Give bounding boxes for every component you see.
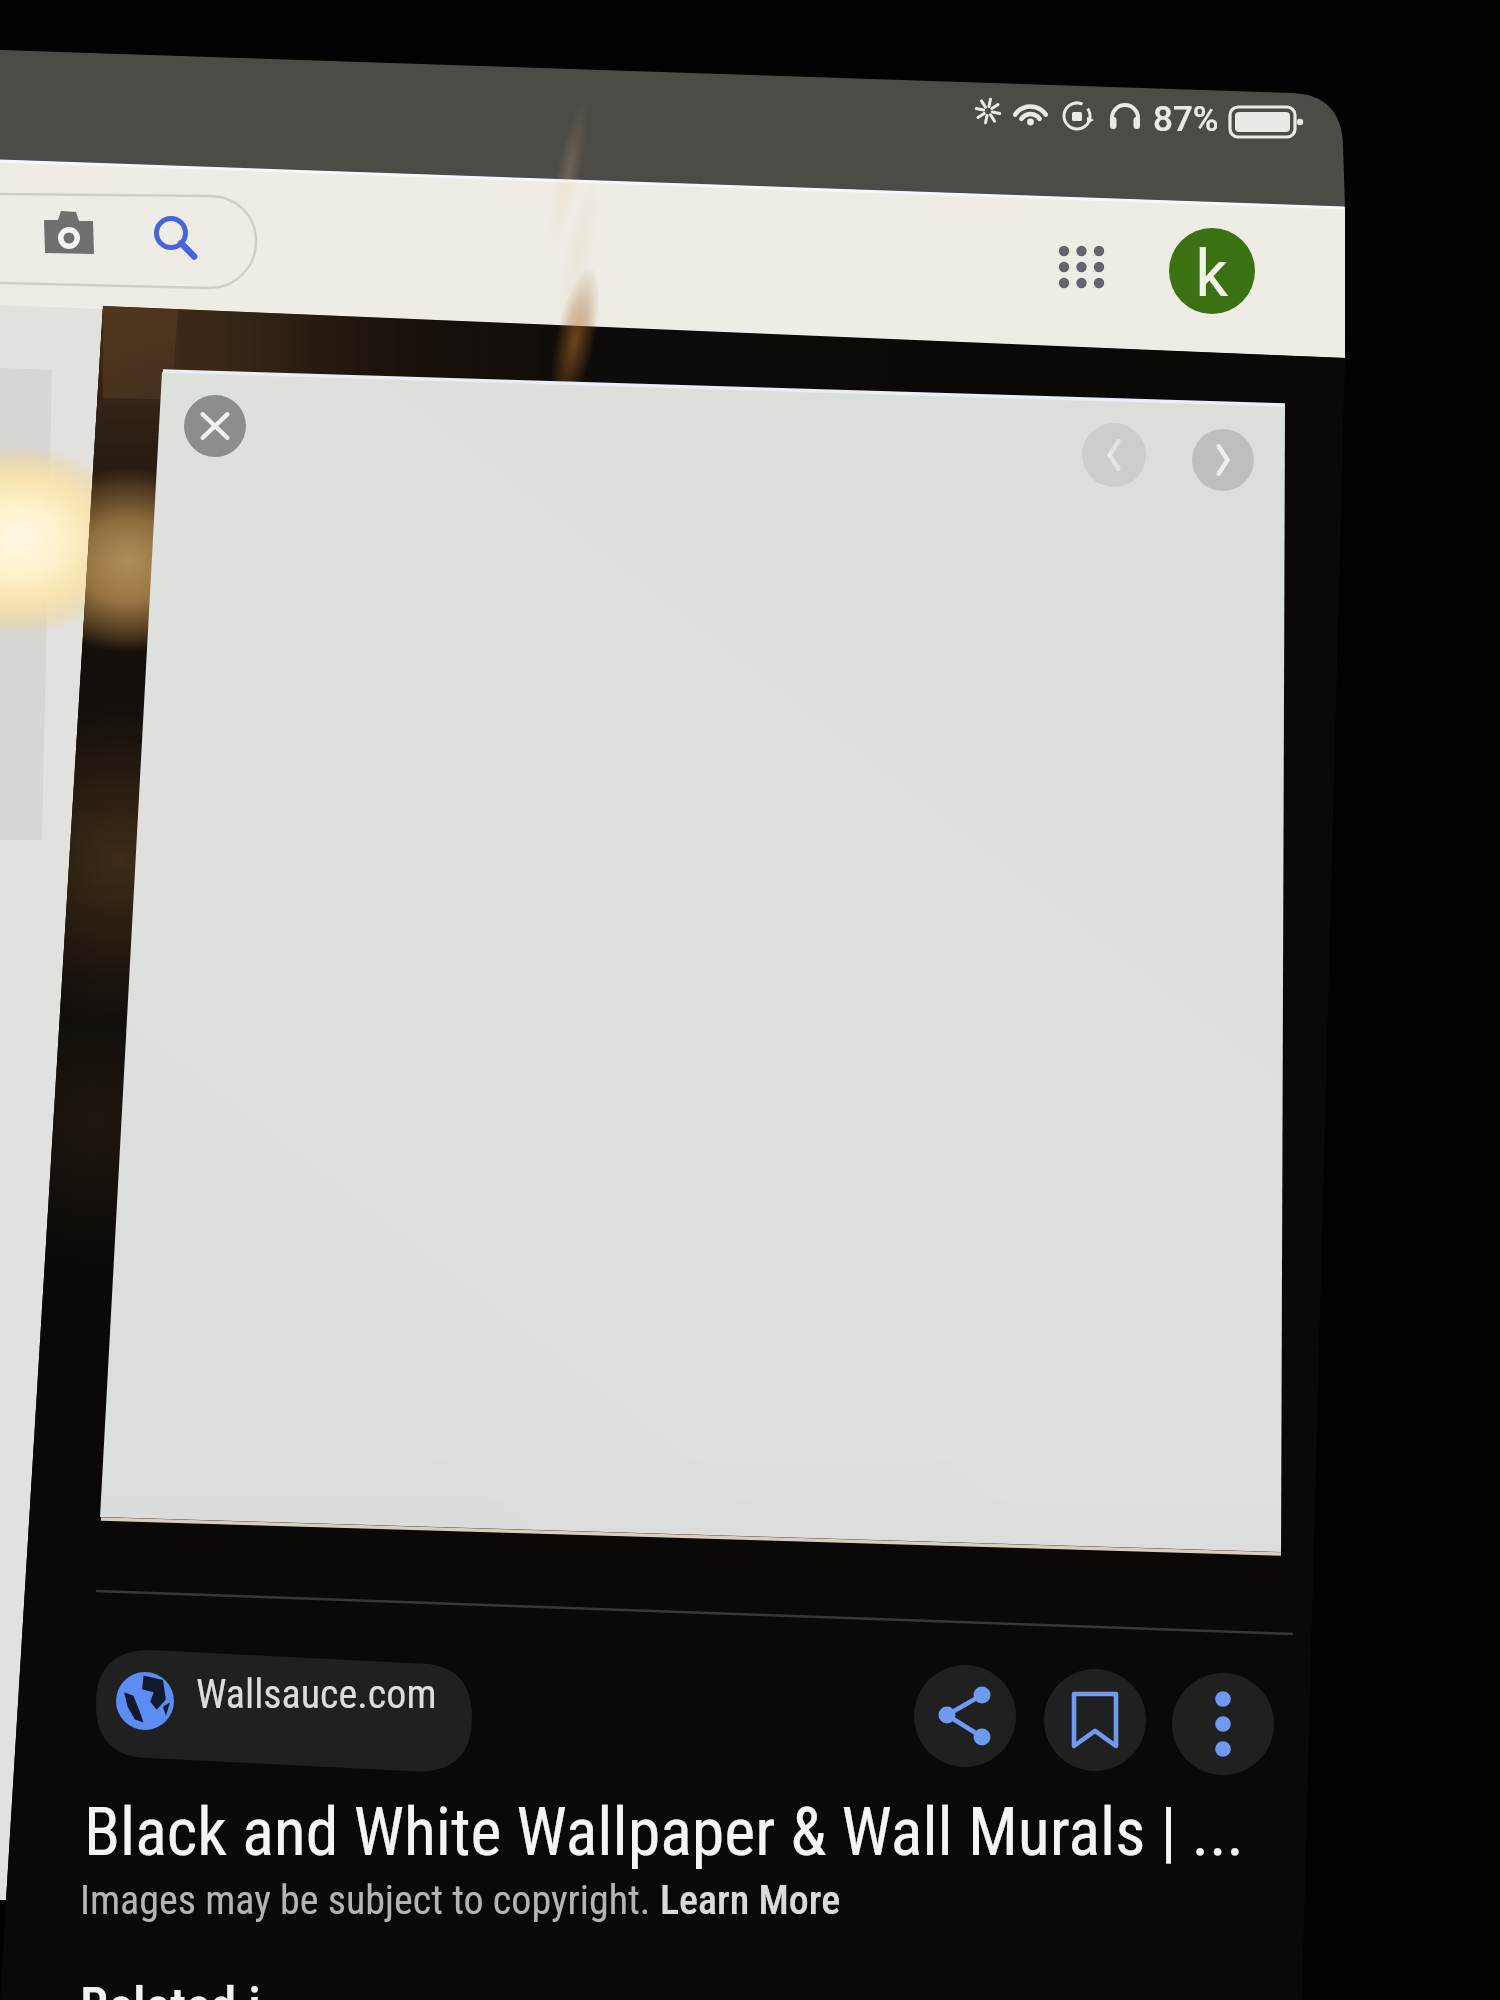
button[interactable]: Bookmark: [1040, 1666, 1150, 1776]
button[interactable]: Share: [910, 1662, 1020, 1772]
button[interactable]: More options: [1168, 1670, 1278, 1780]
button[interactable]: Google apps: [1040, 225, 1110, 295]
button[interactable]: Close: [182, 392, 250, 460]
button[interactable]: Wallsauce.com: [94, 1646, 474, 1760]
button[interactable]: Google Account: [1168, 228, 1256, 316]
button[interactable]: Search: [0, 190, 262, 290]
button[interactable]: Previous image: [1080, 420, 1150, 490]
button[interactable]: Images may be subject to copyright. Lear…: [78, 1874, 858, 1930]
button[interactable]: Next image: [1190, 426, 1260, 496]
button[interactable]: Black and White Wallpaper & Wall Murals: [80, 1788, 1250, 1868]
button[interactable]: Google Lens camera search: [20, 195, 90, 265]
button[interactable]: Black and White Wallpaper, full size ima…: [170, 380, 1280, 1520]
